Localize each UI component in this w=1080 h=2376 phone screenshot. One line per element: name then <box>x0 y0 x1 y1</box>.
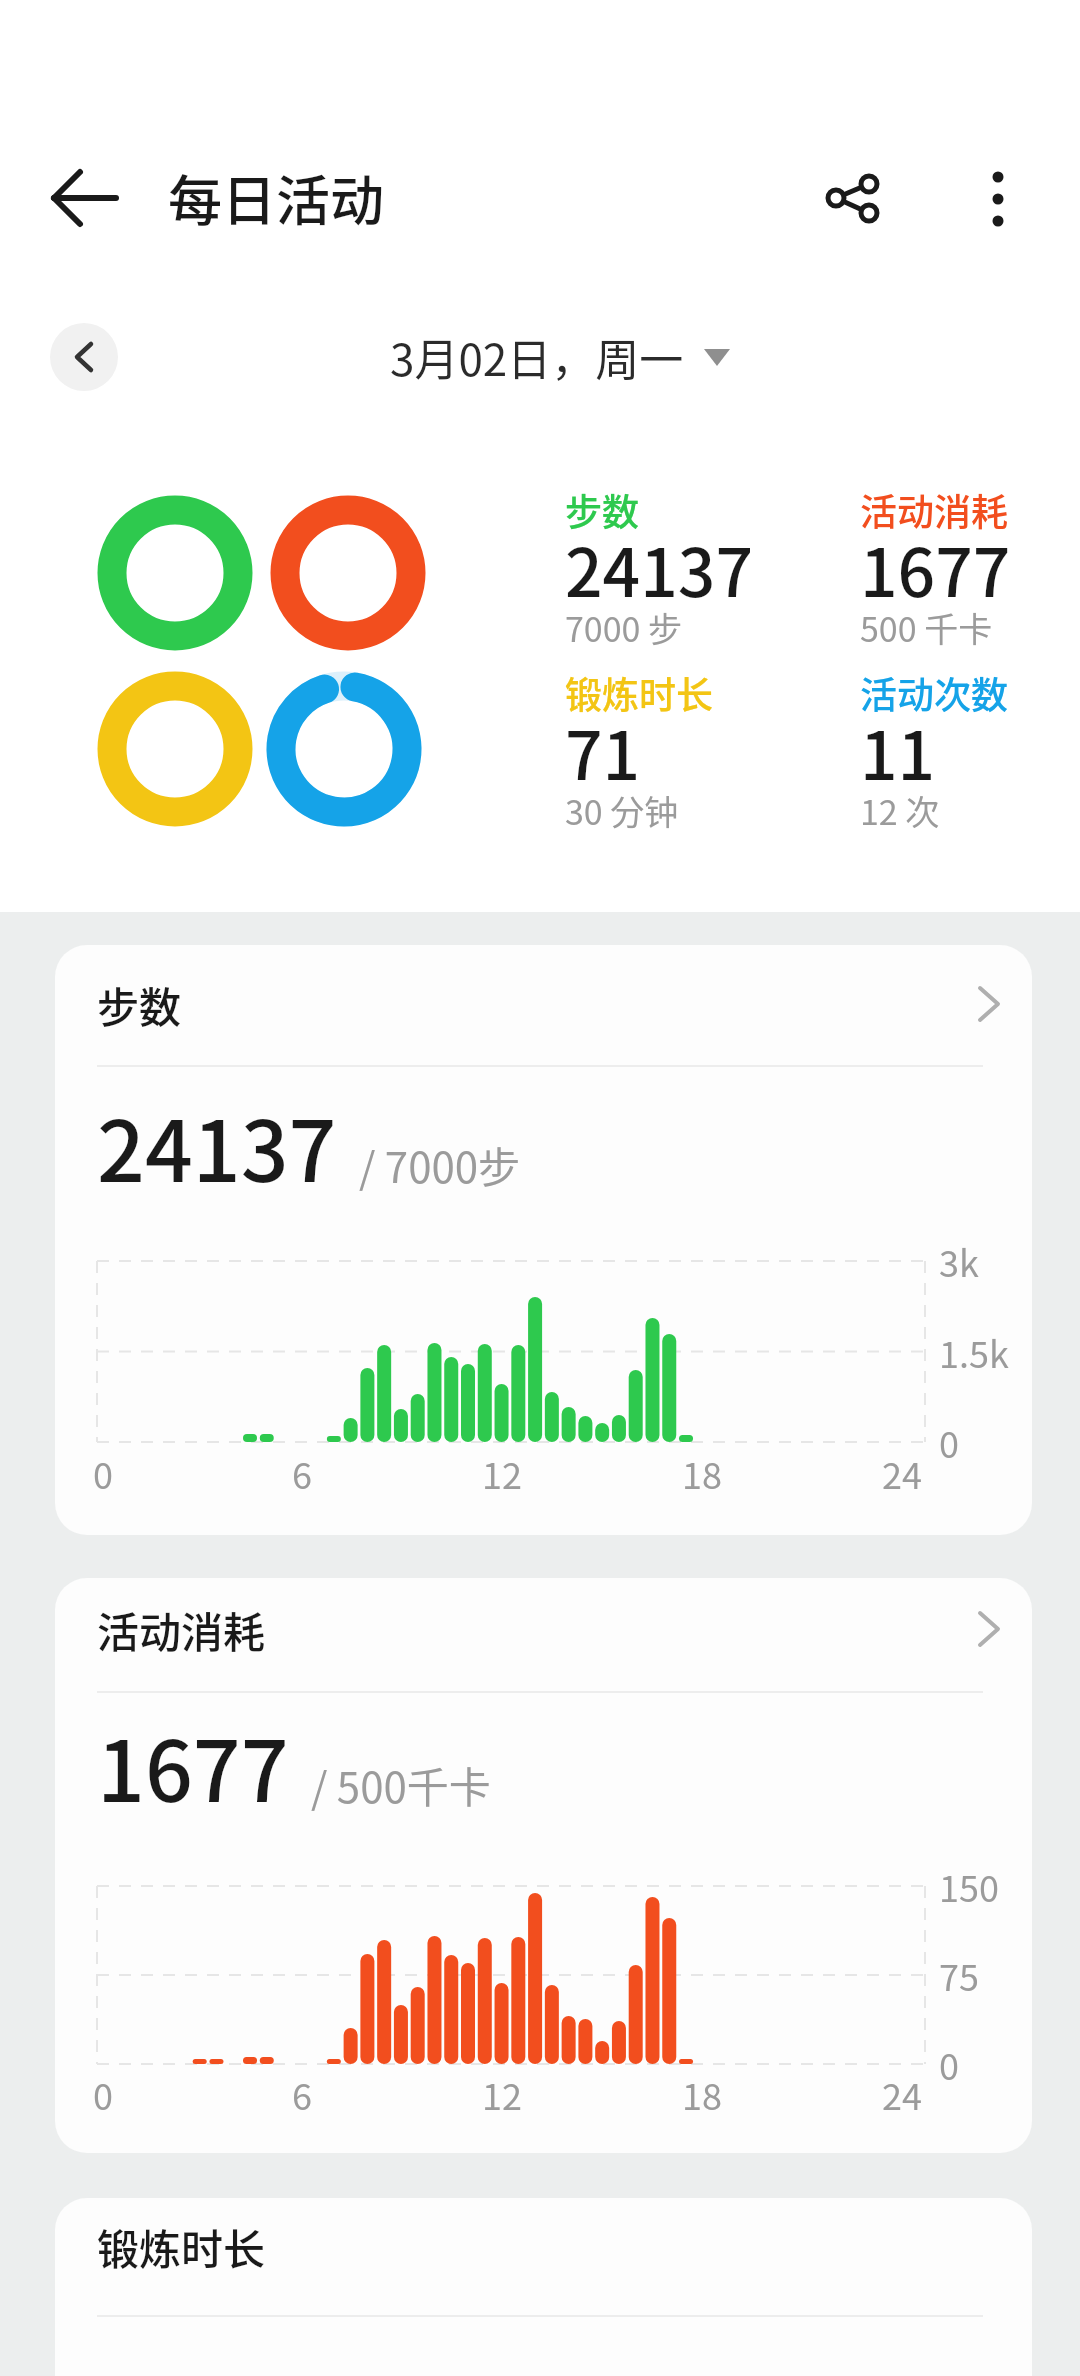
staticText: 0 <box>939 1416 959 1468</box>
button[interactable] <box>30 150 140 245</box>
staticText: 24137 <box>97 1085 337 1207</box>
button[interactable]: 活动消耗 <box>55 1589 1032 1669</box>
staticText: 每日活动 <box>168 158 384 236</box>
staticText: 30 分钟 <box>565 786 679 835</box>
staticText: 0 <box>93 2068 113 2120</box>
staticText: 18 <box>682 2068 722 2120</box>
button[interactable] <box>805 150 900 245</box>
staticText: 0 <box>939 2038 959 2090</box>
staticText: 12 <box>482 2068 522 2120</box>
staticText: 锻炼时长 <box>97 2216 266 2277</box>
staticText: 500 千卡 <box>860 603 993 652</box>
staticText: 7000 步 <box>565 603 683 652</box>
staticText: 步数 <box>97 974 182 1035</box>
staticText: 24 <box>882 2068 922 2120</box>
staticText: 3月02日，周一 <box>390 325 684 389</box>
staticText: 3k <box>939 1235 979 1287</box>
staticText: 71 <box>565 703 641 799</box>
staticText: 6 <box>292 2068 312 2120</box>
staticText: 0 <box>93 1447 113 1499</box>
staticText: 1677 <box>97 1705 289 1827</box>
staticText: 活动消耗 <box>860 483 1008 537</box>
staticText: 24137 <box>565 520 754 616</box>
staticText: 活动消耗 <box>97 1599 266 1660</box>
button[interactable]: 活动消耗 <box>55 1578 1032 2153</box>
button[interactable] <box>50 323 118 391</box>
button[interactable]: 锻炼时长 <box>55 2206 1032 2286</box>
staticText: 6 <box>292 1447 312 1499</box>
staticText: 18 <box>682 1447 722 1499</box>
staticText: 锻炼时长 <box>565 666 713 720</box>
staticText: / 500千卡 <box>311 1754 491 1815</box>
staticText: 75 <box>939 1949 979 2001</box>
button[interactable]: 步数 <box>55 945 1032 1535</box>
staticText: 12 <box>482 1447 522 1499</box>
button[interactable] <box>950 150 1045 245</box>
button[interactable]: 3月02日，周一 <box>20 320 1080 394</box>
staticText: 活动次数 <box>860 666 1008 720</box>
staticText: 24 <box>882 1447 922 1499</box>
staticText: 11 <box>860 703 936 799</box>
staticText: 1677 <box>860 520 1011 616</box>
staticText: 12 次 <box>860 786 940 835</box>
staticText: 150 <box>939 1860 999 1912</box>
button[interactable]: 锻炼时长 <box>55 2198 1032 2376</box>
staticText: 1.5k <box>939 1326 1009 1378</box>
staticText: / 7000步 <box>359 1134 521 1195</box>
staticText: 步数 <box>565 483 639 537</box>
button[interactable]: 步数 <box>55 964 1032 1044</box>
